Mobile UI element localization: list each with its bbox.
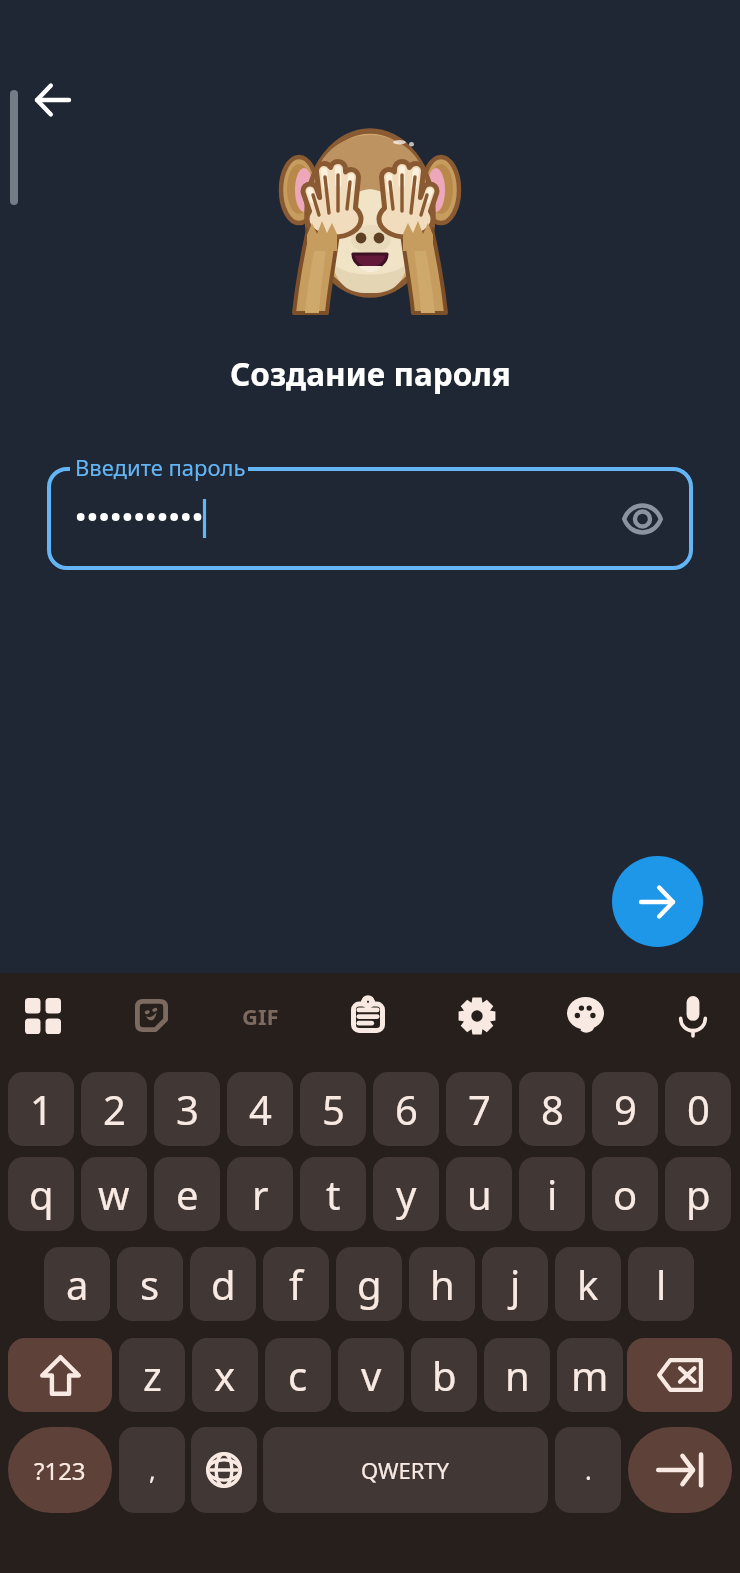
staticText: i xyxy=(547,1167,558,1221)
button[interactable]: QWERTY xyxy=(263,1427,548,1513)
button[interactable]: Settings xyxy=(423,973,531,1058)
button[interactable]: Next xyxy=(612,856,703,947)
button[interactable]: t xyxy=(300,1157,366,1231)
staticText: k xyxy=(577,1257,599,1311)
staticText: t xyxy=(326,1167,341,1221)
staticText: . xyxy=(585,1453,592,1487)
button[interactable]: s xyxy=(117,1247,183,1321)
staticText: n xyxy=(505,1348,530,1402)
button[interactable]: o xyxy=(592,1157,658,1231)
staticText: 3 xyxy=(176,1082,199,1136)
button[interactable]: ?123 xyxy=(8,1427,112,1513)
staticText: j xyxy=(510,1257,521,1311)
staticText: z xyxy=(143,1348,162,1402)
staticText: 8 xyxy=(541,1082,564,1136)
button[interactable]: Clipboard xyxy=(314,973,422,1058)
staticText: ?123 xyxy=(34,1454,86,1487)
button[interactable]: n xyxy=(484,1338,550,1412)
staticText: g xyxy=(357,1257,382,1311)
button[interactable]: 8 xyxy=(519,1072,585,1146)
button[interactable]: Change language xyxy=(191,1427,257,1513)
button[interactable]: e xyxy=(154,1157,220,1231)
button[interactable]: u xyxy=(446,1157,512,1231)
button[interactable]: 7 xyxy=(446,1072,512,1146)
button[interactable]: . xyxy=(555,1427,621,1513)
staticText: Введите пароль xyxy=(75,452,246,482)
staticText: w xyxy=(98,1167,130,1221)
staticText: 6 xyxy=(395,1082,418,1136)
staticText: r xyxy=(252,1167,269,1221)
button[interactable]: , xyxy=(119,1427,185,1513)
button[interactable]: Stickers xyxy=(97,973,205,1058)
staticText: 2 xyxy=(103,1082,126,1136)
button[interactable]: 1 xyxy=(8,1072,74,1146)
staticText: 7 xyxy=(468,1082,491,1136)
button[interactable]: p xyxy=(665,1157,731,1231)
staticText: , xyxy=(149,1453,156,1487)
staticText: 1 xyxy=(30,1082,53,1136)
button[interactable]: Themes xyxy=(531,973,639,1058)
button[interactable]: w xyxy=(81,1157,147,1231)
staticText: s xyxy=(140,1257,160,1311)
button[interactable]: Apps xyxy=(0,973,97,1058)
button[interactable]: c xyxy=(265,1338,331,1412)
staticText: c xyxy=(288,1348,308,1402)
button[interactable]: d xyxy=(190,1247,256,1321)
staticText: Создание пароля xyxy=(230,352,511,395)
staticText: l xyxy=(656,1257,667,1311)
staticText: u xyxy=(467,1167,492,1221)
button[interactable]: z xyxy=(119,1338,185,1412)
staticText: m xyxy=(571,1348,609,1402)
button[interactable]: Enter xyxy=(628,1427,732,1513)
staticText: p xyxy=(686,1167,711,1221)
button[interactable]: 2 xyxy=(81,1072,147,1146)
button[interactable]: j xyxy=(482,1247,548,1321)
staticText: f xyxy=(289,1257,303,1311)
button[interactable]: 3 xyxy=(154,1072,220,1146)
button[interactable]: 5 xyxy=(300,1072,366,1146)
button[interactable]: k xyxy=(555,1247,621,1321)
button[interactable]: Voice input xyxy=(639,973,740,1058)
staticText: x xyxy=(214,1348,236,1402)
button[interactable]: 9 xyxy=(592,1072,658,1146)
button[interactable]: x xyxy=(192,1338,258,1412)
button[interactable]: f xyxy=(263,1247,329,1321)
staticText: a xyxy=(66,1257,89,1311)
button[interactable]: i xyxy=(519,1157,585,1231)
staticText: d xyxy=(211,1257,236,1311)
staticText: QWERTY xyxy=(361,1455,450,1485)
staticText: 9 xyxy=(614,1082,637,1136)
staticText: h xyxy=(430,1257,455,1311)
button[interactable]: Back xyxy=(20,68,84,132)
staticText: o xyxy=(613,1167,638,1221)
button[interactable]: v xyxy=(338,1338,404,1412)
staticText: e xyxy=(176,1167,199,1221)
button[interactable]: Shift xyxy=(8,1338,112,1412)
staticText: b xyxy=(432,1348,457,1402)
button[interactable]: 4 xyxy=(227,1072,293,1146)
staticText: 5 xyxy=(322,1082,345,1136)
staticText: GIF xyxy=(242,1001,279,1031)
staticText: y xyxy=(396,1167,417,1221)
staticText: 0 xyxy=(687,1082,710,1136)
button[interactable]: q xyxy=(8,1157,74,1231)
button[interactable]: b xyxy=(411,1338,477,1412)
button[interactable]: y xyxy=(373,1157,439,1231)
button[interactable]: a xyxy=(44,1247,110,1321)
staticText: q xyxy=(29,1167,54,1221)
button[interactable]: 6 xyxy=(373,1072,439,1146)
button[interactable]: 0 xyxy=(665,1072,731,1146)
button[interactable]: GIF xyxy=(206,973,314,1058)
staticText: 4 xyxy=(249,1082,272,1136)
button[interactable]: r xyxy=(227,1157,293,1231)
button[interactable]: l xyxy=(628,1247,694,1321)
button[interactable]: g xyxy=(336,1247,402,1321)
button[interactable]: Show password xyxy=(598,467,686,570)
staticText: v xyxy=(361,1348,382,1402)
button[interactable]: Backspace xyxy=(627,1338,732,1412)
button[interactable]: h xyxy=(409,1247,475,1321)
button[interactable]: m xyxy=(557,1338,623,1412)
